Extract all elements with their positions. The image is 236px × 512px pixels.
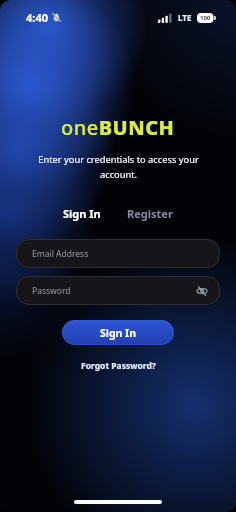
- staticText: Forgot Password?: [81, 360, 156, 372]
- staticText: oneBUNCH: [61, 114, 175, 141]
- button[interactable]: Sign In: [62, 320, 174, 345]
- staticText: Sign In: [63, 206, 101, 221]
- staticText: 4:40: [26, 10, 48, 25]
- button[interactable]: Register: [127, 206, 173, 221]
- staticText: 100: [200, 14, 211, 22]
- staticText: Register: [127, 206, 173, 221]
- staticText: LTE: [178, 12, 192, 23]
- staticText: Email Address: [32, 248, 89, 260]
- button[interactable]: [196, 285, 208, 297]
- button[interactable]: Password: [16, 276, 220, 305]
- staticText: Enter your credentials to access your ac…: [38, 153, 199, 180]
- button[interactable]: Email Address: [16, 239, 220, 268]
- button[interactable]: Forgot Password?: [81, 360, 156, 372]
- staticText: Password: [32, 285, 71, 297]
- staticText: Sign In: [100, 326, 137, 340]
- button[interactable]: Sign In: [63, 206, 101, 221]
